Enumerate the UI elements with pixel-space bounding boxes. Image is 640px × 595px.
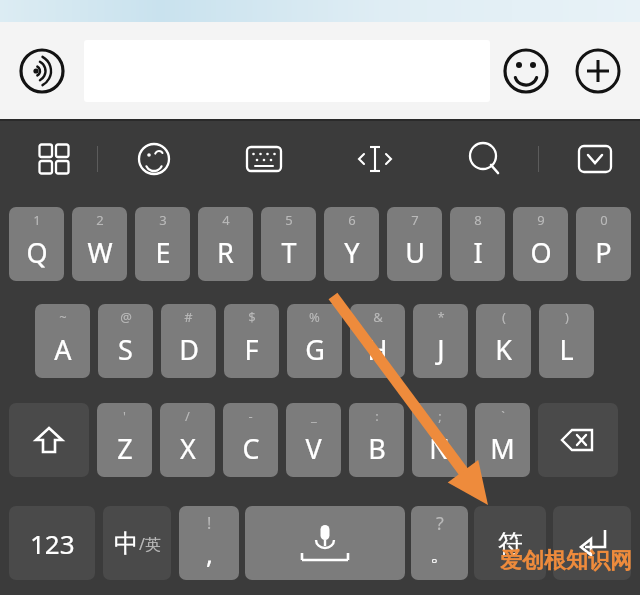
button[interactable]: 0 (576, 207, 631, 281)
staticText: C (242, 430, 260, 467)
staticText: Z (117, 430, 133, 467)
button[interactable]: 5 (261, 207, 316, 281)
button[interactable]: : (349, 403, 404, 477)
button[interactable]: 9 (513, 207, 568, 281)
staticText: ` (501, 407, 505, 425)
staticText: X (180, 430, 196, 467)
other: Enter (570, 521, 614, 565)
button[interactable]: Move cursor (353, 137, 397, 181)
staticText: * (437, 308, 445, 326)
staticText: 123 (30, 526, 75, 561)
button[interactable]: Space, voice input (245, 506, 405, 580)
staticText: F (244, 331, 259, 368)
staticText: $ (248, 308, 256, 326)
other: Backspace (556, 418, 600, 462)
staticText: : (375, 407, 379, 425)
button[interactable]: ? (411, 506, 468, 580)
staticText: O (530, 234, 552, 271)
staticText: K (495, 331, 512, 368)
staticText: / (185, 407, 190, 425)
button[interactable]: Key (538, 403, 618, 477)
button[interactable]: Emoji keyboard (132, 137, 176, 181)
staticText: 8 (474, 211, 482, 229)
staticText: Y (344, 234, 360, 271)
staticText: - (248, 407, 253, 425)
button[interactable]: Key (474, 506, 546, 580)
staticText: U (405, 234, 425, 271)
staticText: E (155, 234, 171, 271)
button[interactable]: 6 (324, 207, 379, 281)
button[interactable]: # (161, 304, 216, 378)
button[interactable]: Key (9, 506, 95, 580)
button[interactable]: 2 (72, 207, 127, 281)
staticText: 符 (498, 528, 523, 559)
button[interactable]: 8 (450, 207, 505, 281)
staticText: 2 (96, 211, 104, 229)
button[interactable]: Keyboard layout (242, 137, 286, 181)
staticText: ( (502, 308, 506, 326)
staticText: P (595, 234, 612, 271)
button[interactable]: Hide keyboard (573, 137, 617, 181)
button[interactable]: Key (103, 506, 171, 580)
staticText: 1 (33, 211, 41, 229)
staticText: T (281, 234, 297, 271)
button[interactable]: ` (475, 403, 530, 477)
button[interactable]: 4 (198, 207, 253, 281)
button[interactable]: ! (179, 506, 239, 580)
staticText: J (437, 331, 445, 368)
staticText: S (118, 331, 133, 368)
staticText: 3 (159, 211, 167, 229)
button[interactable]: Key (9, 403, 89, 477)
button[interactable]: ~ (35, 304, 90, 378)
staticText: I (473, 234, 483, 271)
staticText: @ (120, 308, 132, 326)
staticText: ! (207, 512, 212, 534)
staticText: /英 (139, 533, 161, 555)
staticText: 4 (222, 211, 230, 229)
button[interactable]: Search (463, 137, 507, 181)
staticText: Q (26, 234, 48, 271)
button[interactable]: Emoji (502, 47, 550, 95)
button[interactable]: _ (286, 403, 341, 477)
button[interactable]: / (160, 403, 215, 477)
button[interactable]: ) (539, 304, 594, 378)
staticText: 5 (285, 211, 293, 229)
staticText: G (305, 331, 325, 368)
staticText: 。 (430, 542, 450, 567)
staticText: N (429, 430, 450, 467)
staticText: H (367, 331, 388, 368)
staticText: % (309, 308, 320, 326)
button[interactable]: - (223, 403, 278, 477)
staticText: & (373, 308, 383, 326)
staticText: 爱创根知识网 (500, 547, 632, 575)
button[interactable]: % (287, 304, 342, 378)
staticText: , (206, 536, 213, 571)
button[interactable]: ; (412, 403, 467, 477)
button[interactable]: Panel (32, 137, 76, 181)
button[interactable]: @ (98, 304, 153, 378)
button[interactable]: ( (476, 304, 531, 378)
staticText: L (559, 331, 574, 368)
button[interactable]: Add (574, 47, 622, 95)
staticText: ' (123, 407, 126, 425)
staticText: A (54, 331, 72, 368)
staticText: ? (436, 511, 444, 536)
staticText: # (184, 308, 193, 326)
button[interactable]: Voice input (18, 47, 66, 95)
staticText: 7 (411, 211, 419, 229)
button[interactable]: 1 (9, 207, 64, 281)
button[interactable]: & (350, 304, 405, 378)
staticText: ~ (59, 308, 67, 326)
button[interactable]: Key (553, 506, 631, 580)
staticText: 9 (537, 211, 545, 229)
button[interactable]: 7 (387, 207, 442, 281)
button[interactable]: * (413, 304, 468, 378)
staticText: _ (311, 407, 317, 425)
staticText: 0 (600, 211, 608, 229)
button[interactable]: ' (97, 403, 152, 477)
button[interactable]: 3 (135, 207, 190, 281)
staticText: R (217, 234, 234, 271)
button[interactable]: $ (224, 304, 279, 378)
staticText: B (368, 430, 386, 467)
